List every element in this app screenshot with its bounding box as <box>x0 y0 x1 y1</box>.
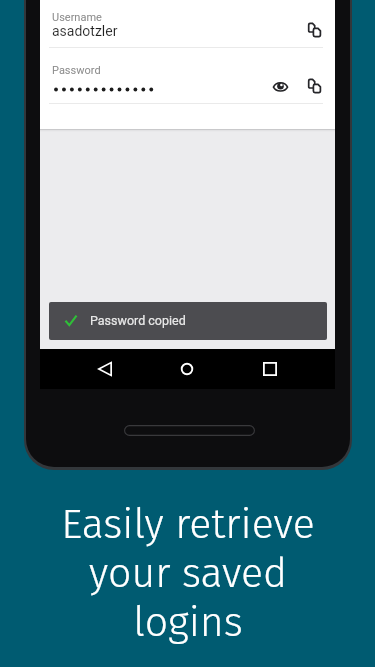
button[interactable]: Back <box>92 356 118 382</box>
button[interactable]: Home <box>174 356 200 382</box>
staticText: Easily retrieve your saved logins <box>61 500 315 647</box>
button[interactable]: Recent apps <box>257 356 283 382</box>
staticText: Password copied <box>90 313 186 328</box>
button[interactable]: Copy username <box>301 17 327 43</box>
button[interactable]: Show password <box>267 73 293 99</box>
staticText: asadotzler <box>52 23 118 39</box>
staticText: Username <box>52 11 102 24</box>
staticText: Password <box>52 64 101 77</box>
button[interactable]: Copy password <box>301 73 327 99</box>
